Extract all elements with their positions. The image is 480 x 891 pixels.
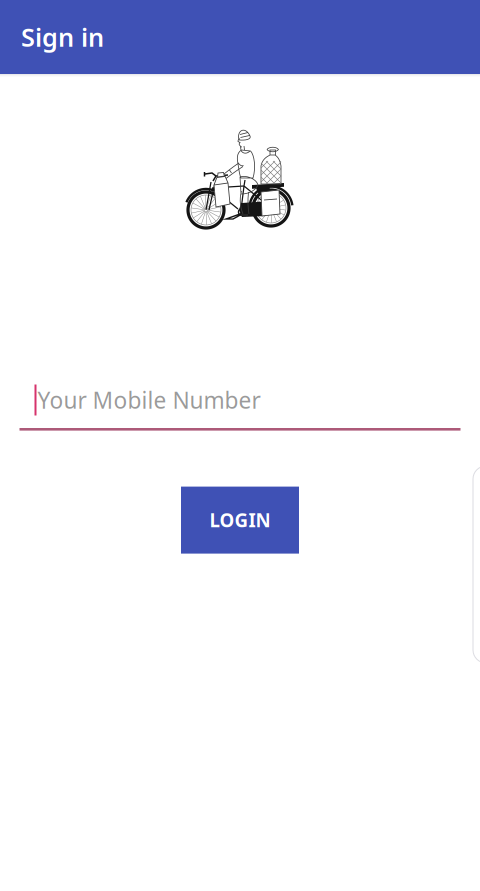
button[interactable]: Your Mobile Number (0, 377, 480, 431)
button[interactable]: LOGIN (181, 487, 299, 554)
staticText: LOGIN (209, 508, 270, 532)
staticText: Sign in (21, 20, 104, 54)
staticText: Your Mobile Number (37, 385, 260, 415)
